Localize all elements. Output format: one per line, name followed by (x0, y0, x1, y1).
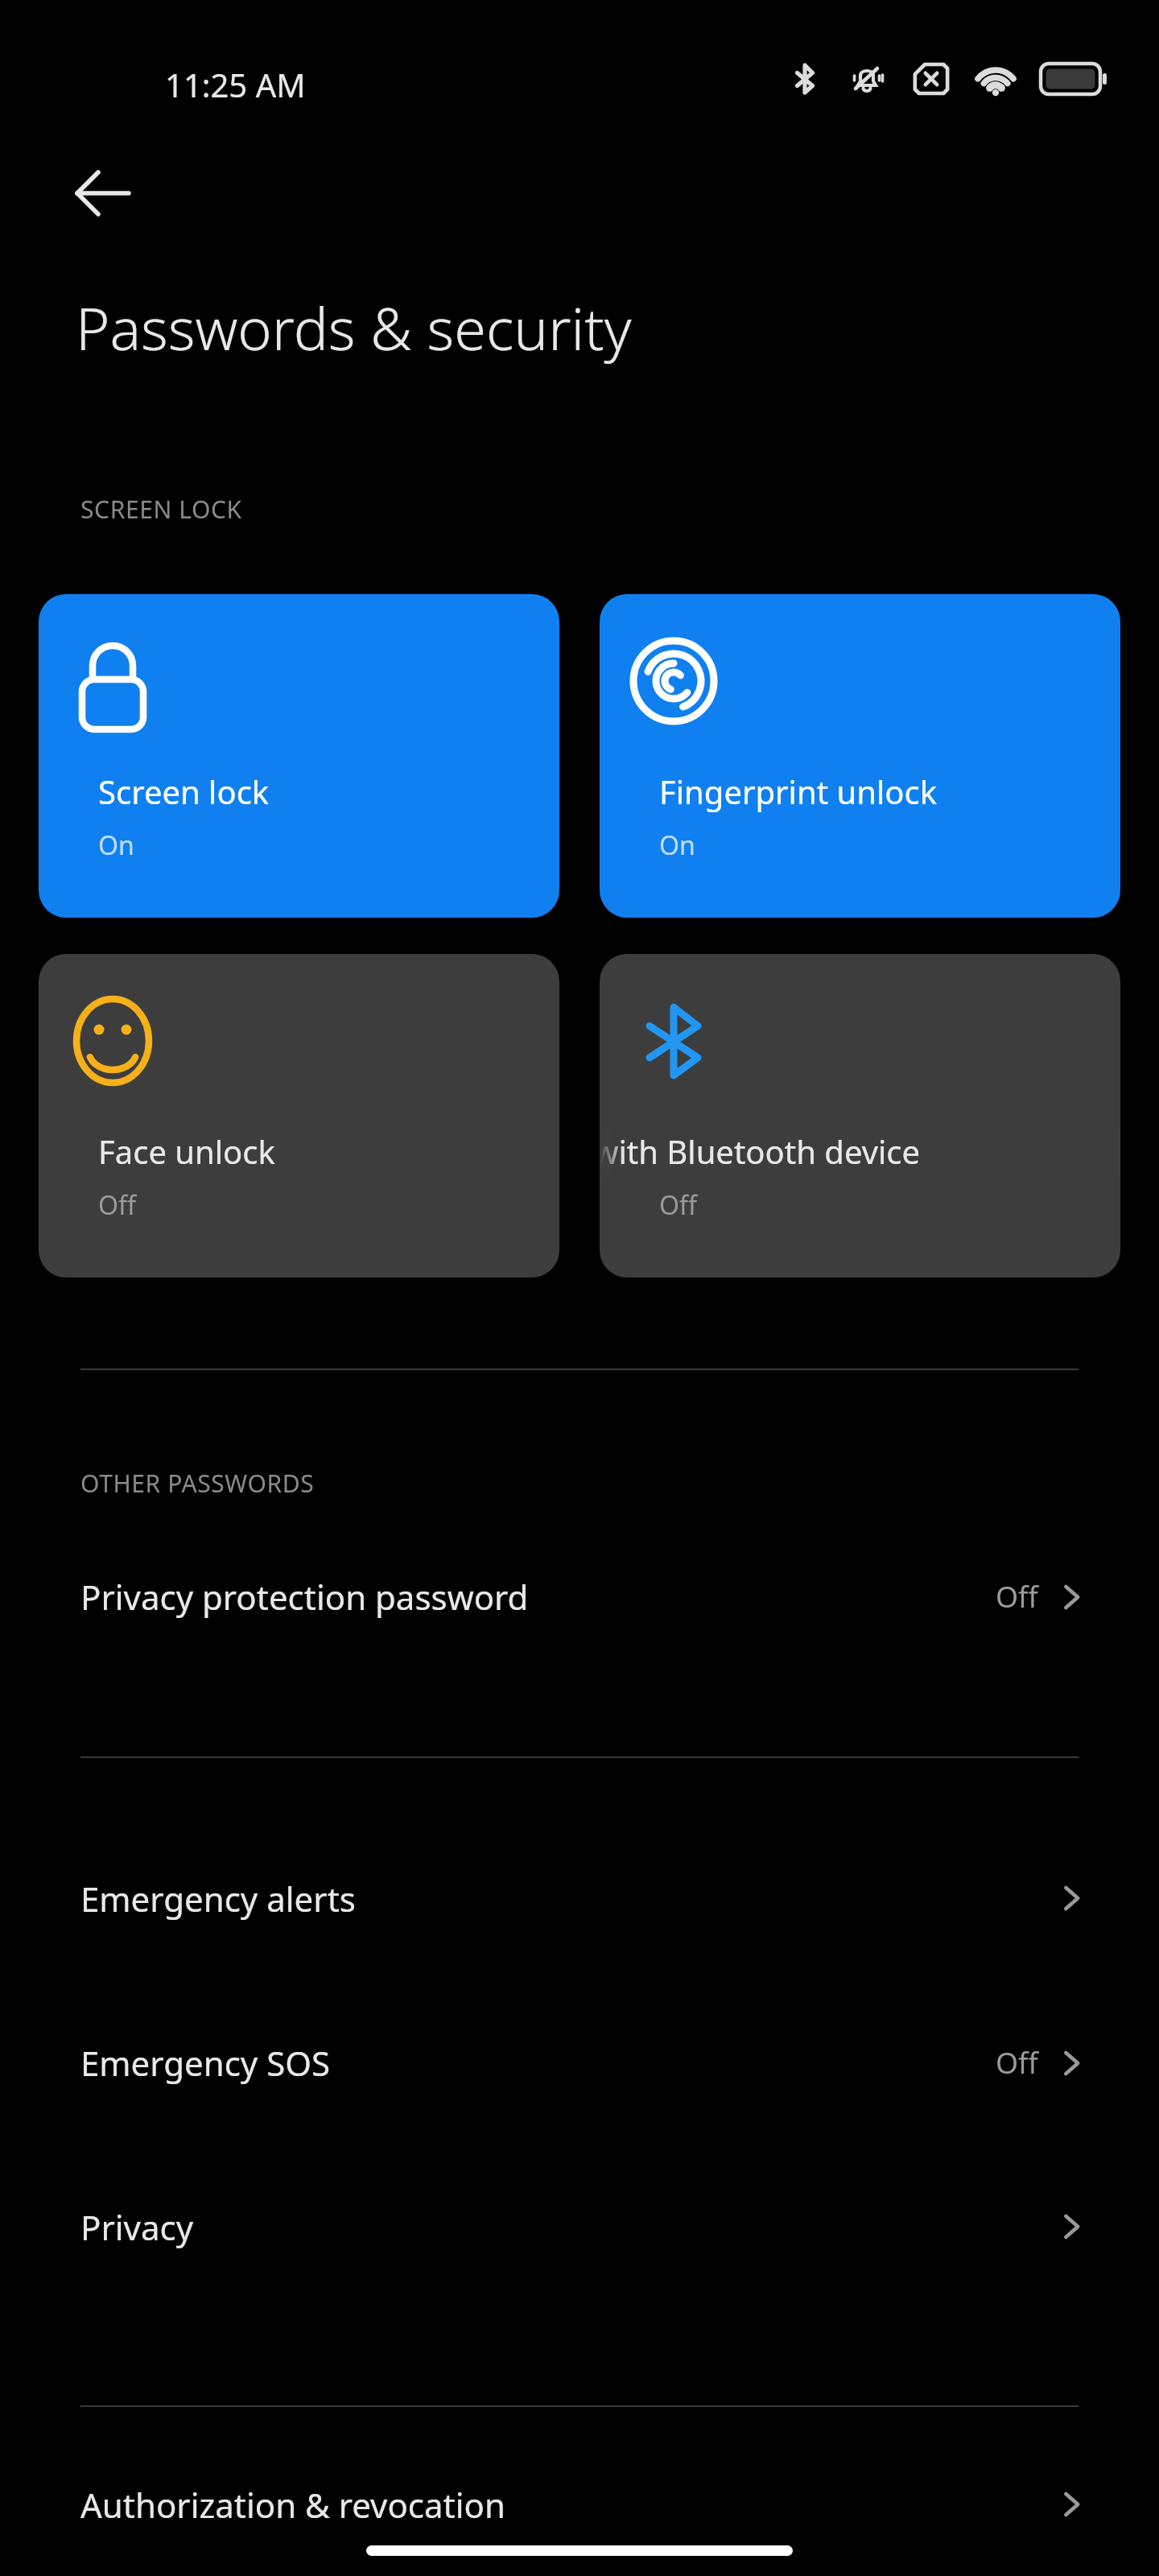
button[interactable]: with Bluetooth device (600, 954, 1120, 1278)
button[interactable]: Authorization & revocation (0, 2454, 1159, 2555)
staticText: OTHER PASSWORDS (80, 1467, 315, 1500)
staticText: Passwords & security (76, 288, 632, 367)
staticText: Emergency alerts (80, 1876, 356, 1922)
staticText: Emergency SOS (80, 2040, 331, 2086)
button[interactable]: Fingerprint unlock (600, 594, 1120, 918)
staticText: Off (98, 1187, 137, 1223)
staticText: Fingerprint unlock (659, 770, 937, 813)
staticText: Privacy (80, 2204, 194, 2250)
staticText: with Bluetooth device (600, 1129, 921, 1173)
staticText: Off (996, 1577, 1038, 1616)
staticText: Screen lock (98, 770, 270, 813)
button[interactable]: Face unlock (39, 954, 559, 1278)
button[interactable]: Back (58, 145, 155, 242)
staticText: SCREEN LOCK (80, 493, 242, 526)
staticText: Authorization & revocation (80, 2482, 505, 2528)
staticText: Off (996, 2043, 1038, 2083)
staticText: Face unlock (98, 1129, 275, 1173)
button[interactable]: Emergency alerts (0, 1847, 1159, 1949)
staticText: On (659, 828, 695, 863)
button[interactable]: Emergency SOS (0, 2012, 1159, 2113)
staticText: 11:25 AM (165, 63, 306, 106)
staticText: Off (659, 1187, 698, 1223)
staticText: On (98, 828, 134, 863)
button[interactable]: Privacy protection password (0, 1546, 1159, 1647)
staticText: Privacy protection password (80, 1574, 529, 1620)
button[interactable]: Screen lock (39, 594, 559, 918)
button[interactable]: Privacy (0, 2176, 1159, 2277)
